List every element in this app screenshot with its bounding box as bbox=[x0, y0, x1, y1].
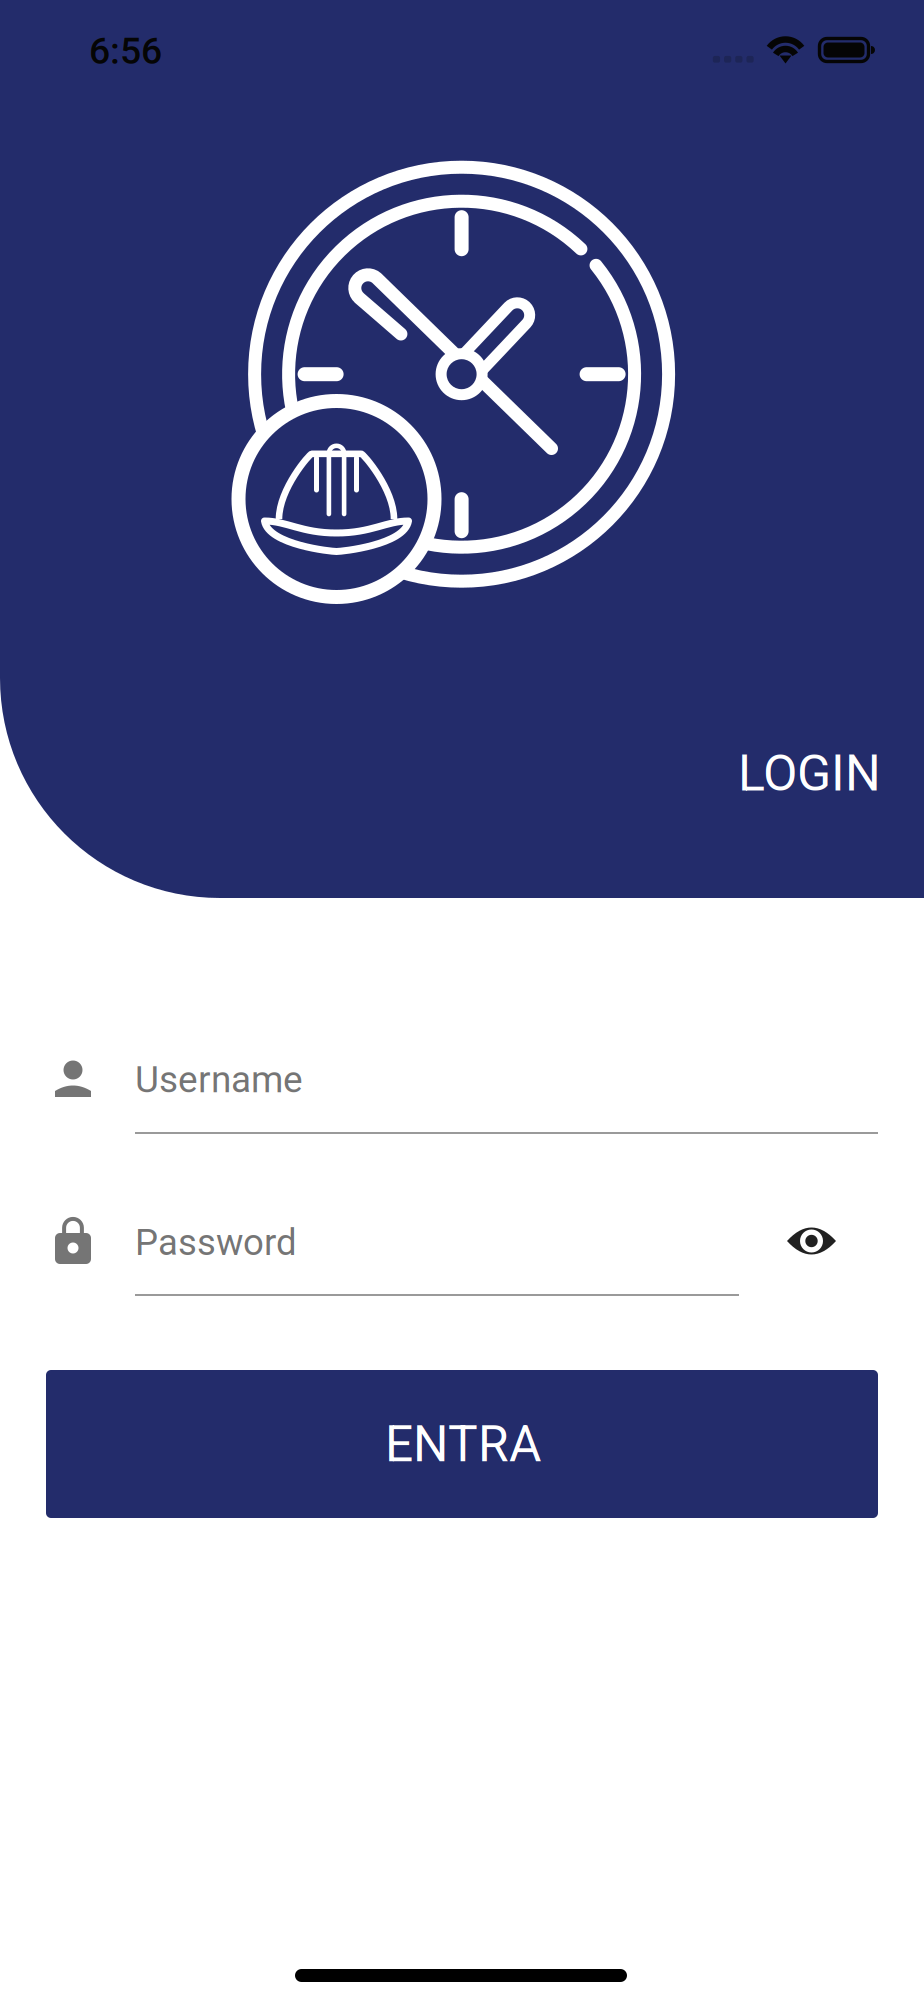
staticText: Username bbox=[135, 1058, 303, 1101]
button[interactable]: ENTRA bbox=[0, 0, 924, 2000]
staticText: Password bbox=[135, 1221, 297, 1264]
staticText: ENTRA bbox=[385, 1415, 541, 1473]
button[interactable]: Show password bbox=[0, 0, 924, 2000]
staticText: LOGIN bbox=[738, 744, 881, 803]
staticText: 6:56 bbox=[89, 29, 162, 73]
